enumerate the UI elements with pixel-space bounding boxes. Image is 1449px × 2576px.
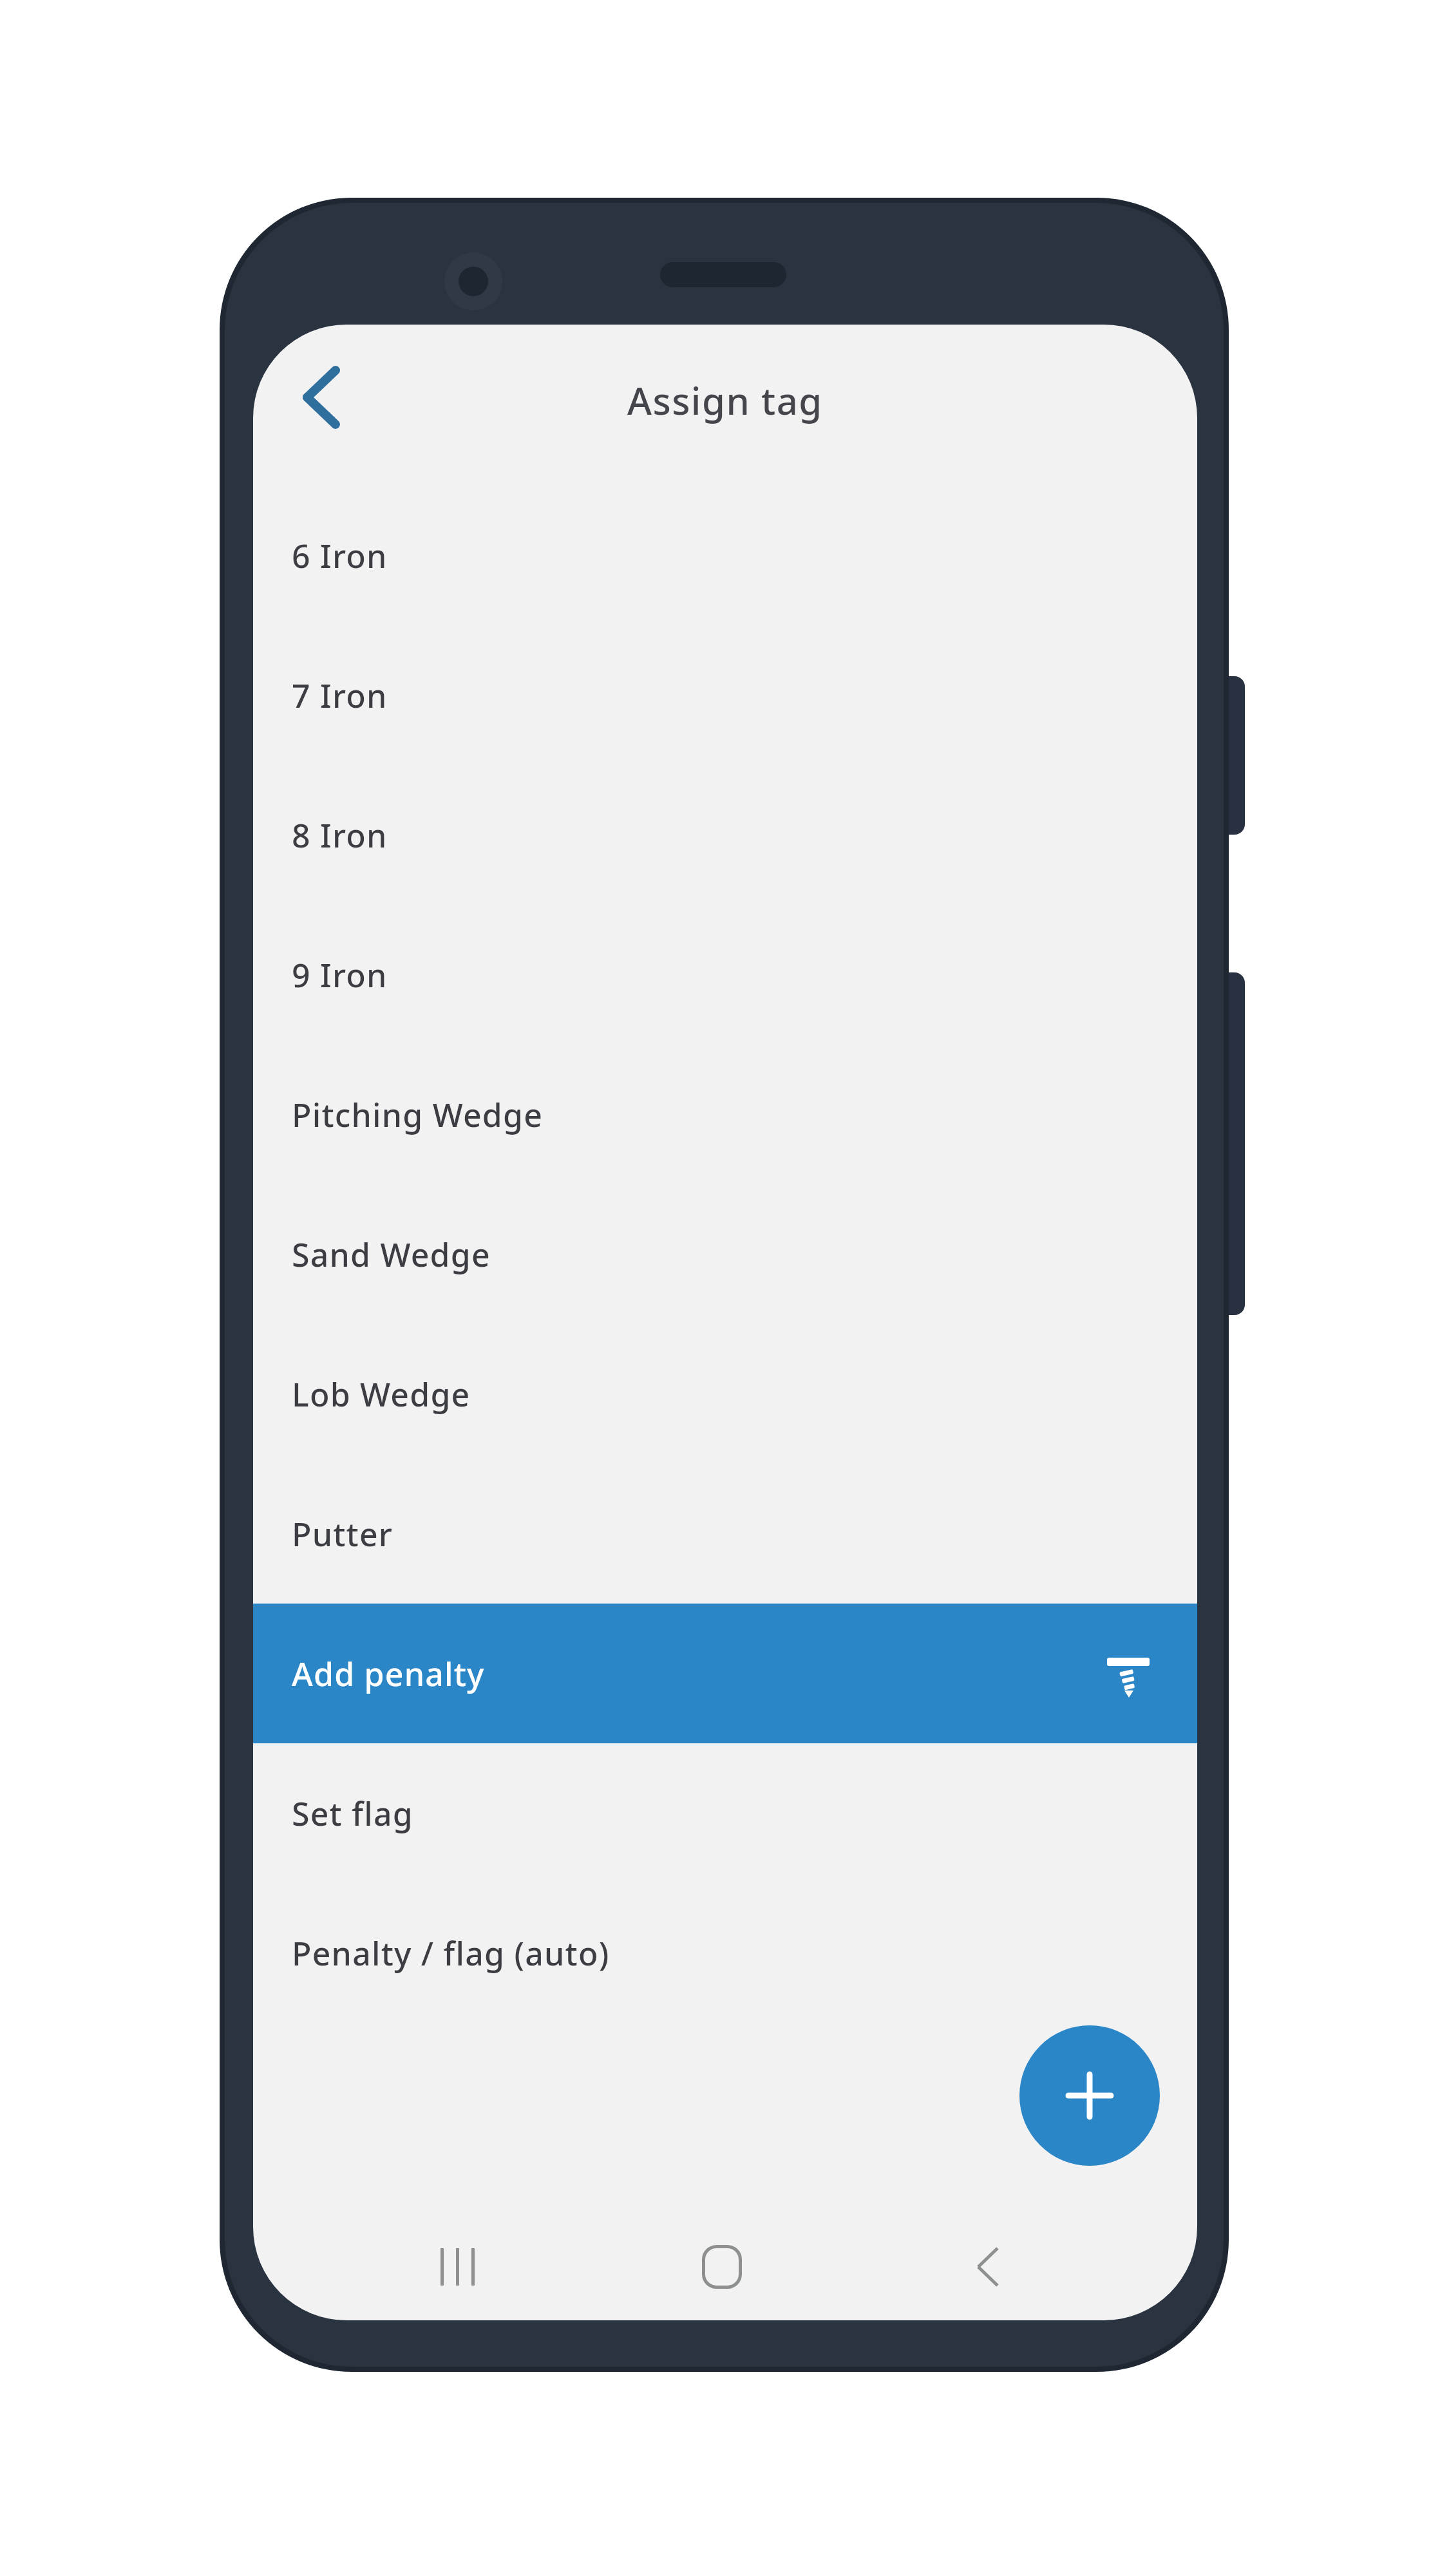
button[interactable]: Pitching Wedge (253, 1045, 1197, 1184)
staticText: 7 Iron (292, 674, 388, 717)
button[interactable]: 8 Iron (253, 765, 1197, 905)
staticText: Assign tag (627, 375, 823, 426)
button[interactable]: 7 Iron (253, 625, 1197, 765)
button[interactable]: Lob Wedge (253, 1324, 1197, 1464)
button[interactable] (419, 2228, 497, 2306)
button[interactable] (1019, 2025, 1160, 2166)
staticText: 9 Iron (292, 953, 388, 997)
button[interactable]: Set flag (253, 1743, 1197, 1883)
button[interactable]: Add penalty (253, 1604, 1197, 1743)
button[interactable]: Penalty / flag (auto) (253, 1883, 1197, 2023)
staticText: Pitching Wedge (292, 1093, 544, 1137)
button[interactable] (683, 2228, 761, 2306)
staticText: 8 Iron (292, 813, 388, 857)
staticText: Add penalty (292, 1652, 485, 1696)
button[interactable]: Sand Wedge (253, 1184, 1197, 1324)
button[interactable]: 6 Iron (253, 486, 1197, 625)
staticText: Penalty / flag (auto) (292, 1931, 610, 1975)
button[interactable] (284, 357, 358, 437)
staticText: Putter (292, 1512, 393, 1556)
staticText: 6 Iron (292, 534, 388, 578)
staticText: Sand Wedge (292, 1233, 491, 1276)
staticText: Set flag (292, 1792, 413, 1835)
button[interactable]: Putter (253, 1464, 1197, 1604)
button[interactable]: 9 Iron (253, 905, 1197, 1045)
staticText: Lob Wedge (292, 1372, 471, 1416)
button[interactable] (949, 2228, 1027, 2306)
